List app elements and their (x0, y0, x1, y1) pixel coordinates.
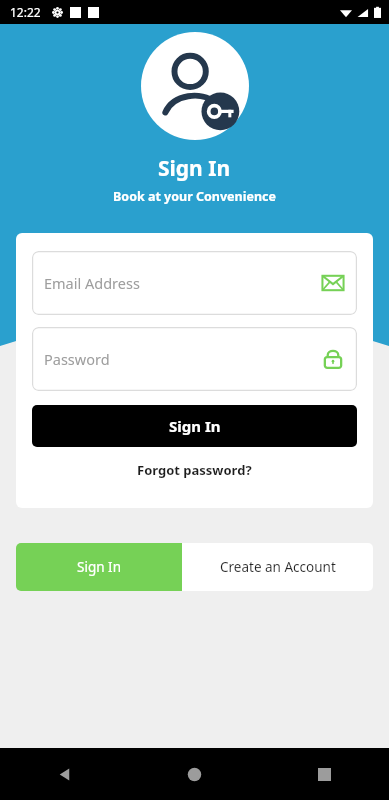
staticText: Sign In (169, 416, 221, 436)
button[interactable]: Recent apps (259, 748, 389, 800)
staticText: Password (44, 349, 321, 369)
staticText: Sign In (77, 558, 121, 576)
button[interactable]: Sign In (16, 543, 182, 591)
button[interactable]: Home (129, 748, 259, 800)
button[interactable]: Back (0, 748, 129, 800)
other: Password (321, 347, 345, 371)
other: Email (321, 271, 345, 295)
button[interactable]: Create an Account (182, 543, 373, 591)
staticText: Create an Account (220, 558, 336, 576)
staticText: Email Address (44, 273, 321, 293)
staticText: 12:22 (10, 4, 41, 20)
button[interactable]: Sign In (32, 405, 357, 447)
button[interactable]: Email Address (32, 251, 357, 315)
staticText: Forgot password? (137, 461, 252, 479)
staticText: Book at your Convenience (113, 188, 276, 205)
staticText: Sign In (158, 154, 231, 183)
button[interactable]: Password (32, 327, 357, 391)
button[interactable]: Forgot password? (32, 456, 357, 484)
